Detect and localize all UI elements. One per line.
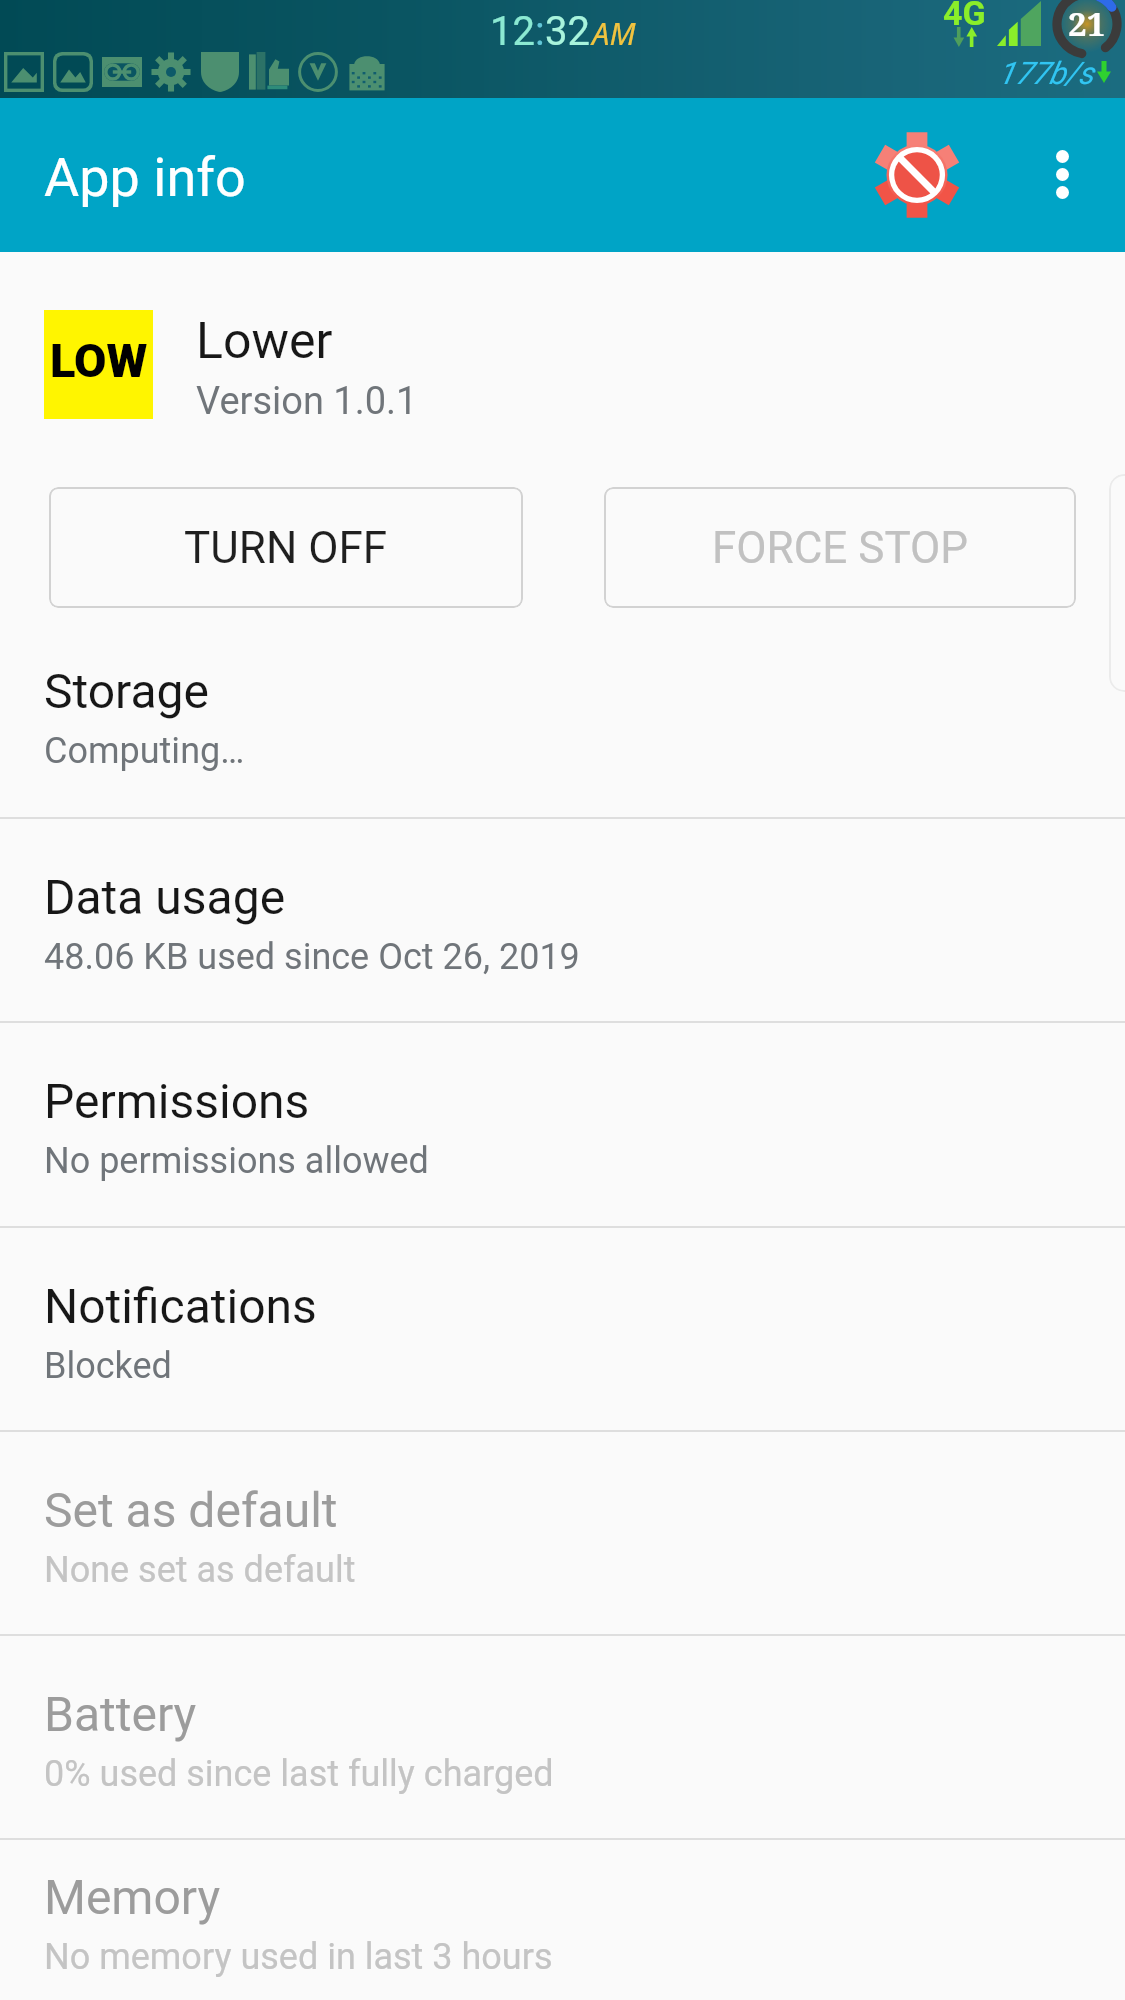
staticText: Computing… xyxy=(44,730,245,772)
staticText: Permissions xyxy=(44,1073,310,1129)
button[interactable]: Data usage xyxy=(0,819,1125,1021)
button[interactable]: More options xyxy=(1005,117,1119,231)
button[interactable]: Permissions xyxy=(0,1023,1125,1226)
staticText: 21 xyxy=(1068,1,1106,46)
staticText: None set as default xyxy=(44,1549,356,1591)
button[interactable]: Disable app xyxy=(857,115,977,235)
staticText: 0% used since last fully charged xyxy=(44,1753,554,1795)
staticText: Set as default xyxy=(44,1482,338,1538)
button[interactable]: Memory xyxy=(0,1840,1125,2000)
staticText: FORCE STOP xyxy=(712,522,969,574)
staticText: AM xyxy=(592,12,636,54)
staticText: 4G xyxy=(943,0,986,33)
staticText: 48.06 KB used since Oct 26, 2019 xyxy=(44,936,580,978)
staticText: No memory used in last 3 hours xyxy=(44,1936,553,1978)
button[interactable]: Set as default xyxy=(0,1432,1125,1634)
button[interactable]: Notifications xyxy=(0,1228,1125,1430)
staticText: Blocked xyxy=(44,1345,172,1387)
button[interactable]: Storage xyxy=(0,610,1125,817)
staticText: TURN OFF xyxy=(184,522,388,574)
staticText: Memory xyxy=(44,1869,221,1925)
staticText: Battery xyxy=(44,1686,197,1742)
button[interactable]: FORCE STOP xyxy=(604,487,1076,608)
staticText: 177b/s xyxy=(998,55,1094,91)
staticText: : xyxy=(535,8,545,55)
staticText: Lower xyxy=(196,312,333,371)
staticText: App info xyxy=(44,146,246,209)
staticText: LOW xyxy=(50,333,148,388)
staticText: Storage xyxy=(44,663,209,719)
staticText: Notifications xyxy=(44,1278,317,1334)
button[interactable]: TURN OFF xyxy=(49,487,523,608)
staticText: 32 xyxy=(545,8,590,55)
staticText: 12 xyxy=(490,8,535,55)
staticText: No permissions allowed xyxy=(44,1140,429,1182)
staticText: Data usage xyxy=(44,869,286,925)
button[interactable]: Battery xyxy=(0,1636,1125,1838)
staticText: Version 1.0.1 xyxy=(196,379,418,421)
